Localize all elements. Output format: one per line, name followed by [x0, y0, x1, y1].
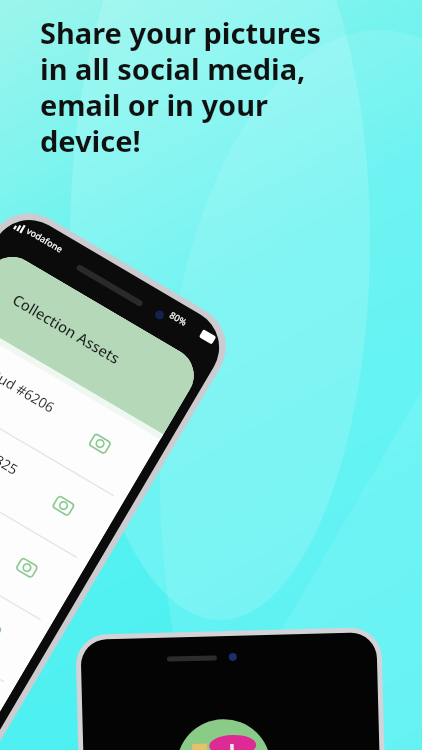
- button[interactable]: Share your pictures promotional screen: [0, 0, 422, 750]
